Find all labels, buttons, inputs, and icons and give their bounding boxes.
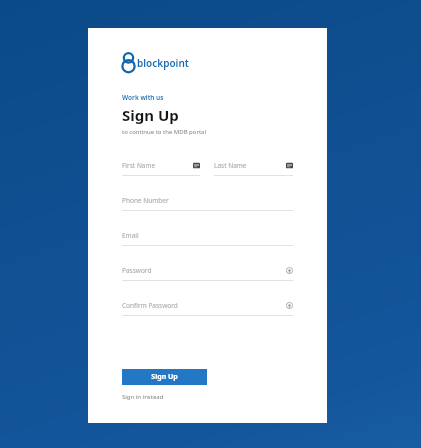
other: Show confirm password — [286, 302, 293, 309]
button[interactable]: Sign Up — [122, 369, 207, 385]
button[interactable]: Confirm Password — [122, 299, 293, 316]
other: Show password — [286, 267, 293, 274]
staticText: to continue to the MDB portal — [122, 128, 206, 136]
staticText: First Name — [122, 161, 193, 170]
staticText: Last Name — [214, 161, 286, 170]
other: Last name info — [286, 162, 293, 169]
staticText: Sign Up — [151, 372, 178, 382]
button[interactable]: Email — [122, 229, 293, 246]
staticText: Sign Up — [122, 105, 179, 125]
staticText: Password — [122, 266, 286, 275]
staticText: Confirm Password — [122, 301, 286, 310]
button[interactable]: Password — [122, 264, 293, 281]
button[interactable]: Phone Number — [122, 194, 293, 211]
staticText: Work with us — [122, 93, 164, 102]
button[interactable]: First Name — [122, 159, 200, 176]
staticText: Phone Number — [122, 196, 293, 205]
staticText: blockpoint — [137, 56, 189, 70]
other: First name info — [193, 162, 200, 169]
staticText: Sign in instead — [122, 393, 164, 401]
staticText: Email — [122, 231, 293, 240]
button[interactable]: Last Name — [214, 159, 293, 176]
button[interactable]: Sign in instead — [122, 393, 164, 401]
